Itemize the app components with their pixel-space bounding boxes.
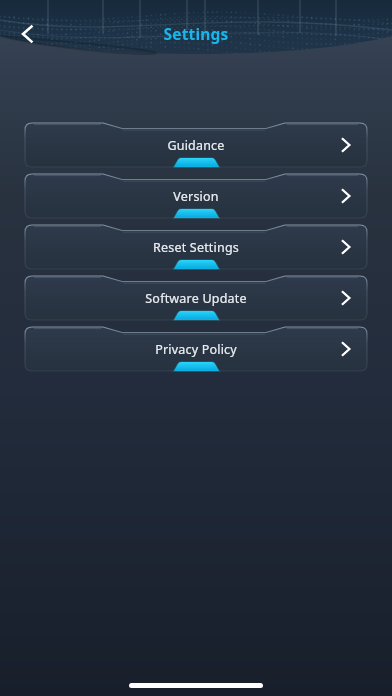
button[interactable]: Guidance	[25, 123, 367, 167]
button[interactable]: Version	[25, 174, 367, 218]
staticText: Reset Settings	[25, 239, 367, 256]
staticText: Privacy Policy	[25, 341, 367, 358]
staticText: Settings	[0, 23, 392, 44]
button[interactable]: Back	[8, 16, 44, 52]
button[interactable]: Privacy Policy	[25, 327, 367, 371]
staticText: Software Update	[25, 290, 367, 307]
button[interactable]: Software Update	[25, 276, 367, 320]
button[interactable]: Reset Settings	[25, 225, 367, 269]
staticText: Version	[25, 188, 367, 205]
staticText: Guidance	[25, 137, 367, 154]
